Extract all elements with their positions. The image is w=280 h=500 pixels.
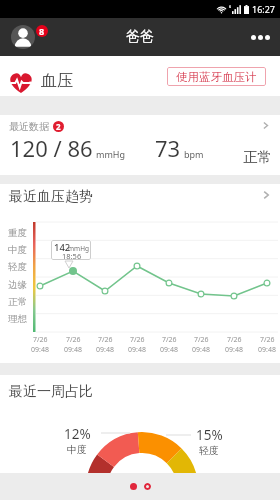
staticText: 8 (39, 25, 45, 37)
staticText: 18:56 (62, 251, 82, 260)
staticText: 7/26 (130, 335, 145, 345)
staticText: bpm (184, 148, 204, 160)
staticText: 09:48 (192, 345, 210, 355)
staticText: 正常 (8, 296, 27, 308)
staticText: 09:48 (258, 345, 276, 355)
staticText: 正常 (243, 148, 272, 166)
staticText: 120 / 86 (10, 133, 93, 163)
staticText: 中度 (8, 244, 27, 256)
staticText: 最近一周占比 (9, 383, 93, 401)
staticText: 重度 (8, 227, 27, 239)
staticText: 理想 (8, 313, 27, 325)
staticText: 09:48 (225, 345, 243, 355)
staticText: 爸爸 (126, 28, 154, 46)
staticText: 轻度 (199, 444, 219, 457)
button[interactable]: Profile (8, 20, 50, 54)
staticText: mmHg (68, 244, 89, 253)
staticText: 73 (155, 133, 181, 163)
staticText: 边缘 (8, 279, 27, 291)
staticText: 142 (54, 241, 71, 254)
staticText: 09:48 (128, 345, 146, 355)
staticText: 2 (56, 121, 61, 132)
staticText: 16:27 (252, 3, 276, 15)
staticText: 最近数据 (9, 120, 49, 133)
staticText: mmHg (96, 148, 126, 160)
staticText: 轻度 (8, 261, 27, 273)
staticText: 7/26 (33, 335, 48, 345)
staticText: 7/26 (162, 335, 177, 345)
staticText: 7/26 (98, 335, 113, 345)
button[interactable]: 最近数据 (0, 115, 280, 175)
staticText: 7/26 (194, 335, 209, 345)
staticText: 12% (64, 425, 91, 443)
staticText: 09:48 (64, 345, 82, 355)
staticText: 中度 (67, 443, 87, 456)
staticText: 7/26 (227, 335, 242, 345)
button[interactable]: 使用蓝牙血压计 (167, 67, 266, 86)
staticText: 7/26 (66, 335, 81, 345)
staticText: 15% (196, 426, 223, 444)
staticText: 使用蓝牙血压计 (176, 70, 257, 84)
staticText: 09:48 (160, 345, 178, 355)
staticText: 09:48 (96, 345, 114, 355)
staticText: 最近血压趋势 (9, 188, 93, 206)
staticText: 09:48 (31, 345, 49, 355)
staticText: ⁶ (229, 5, 232, 13)
staticText: 血压 (41, 71, 73, 91)
button[interactable]: More options (244, 18, 280, 56)
staticText: 7/26 (260, 335, 275, 345)
